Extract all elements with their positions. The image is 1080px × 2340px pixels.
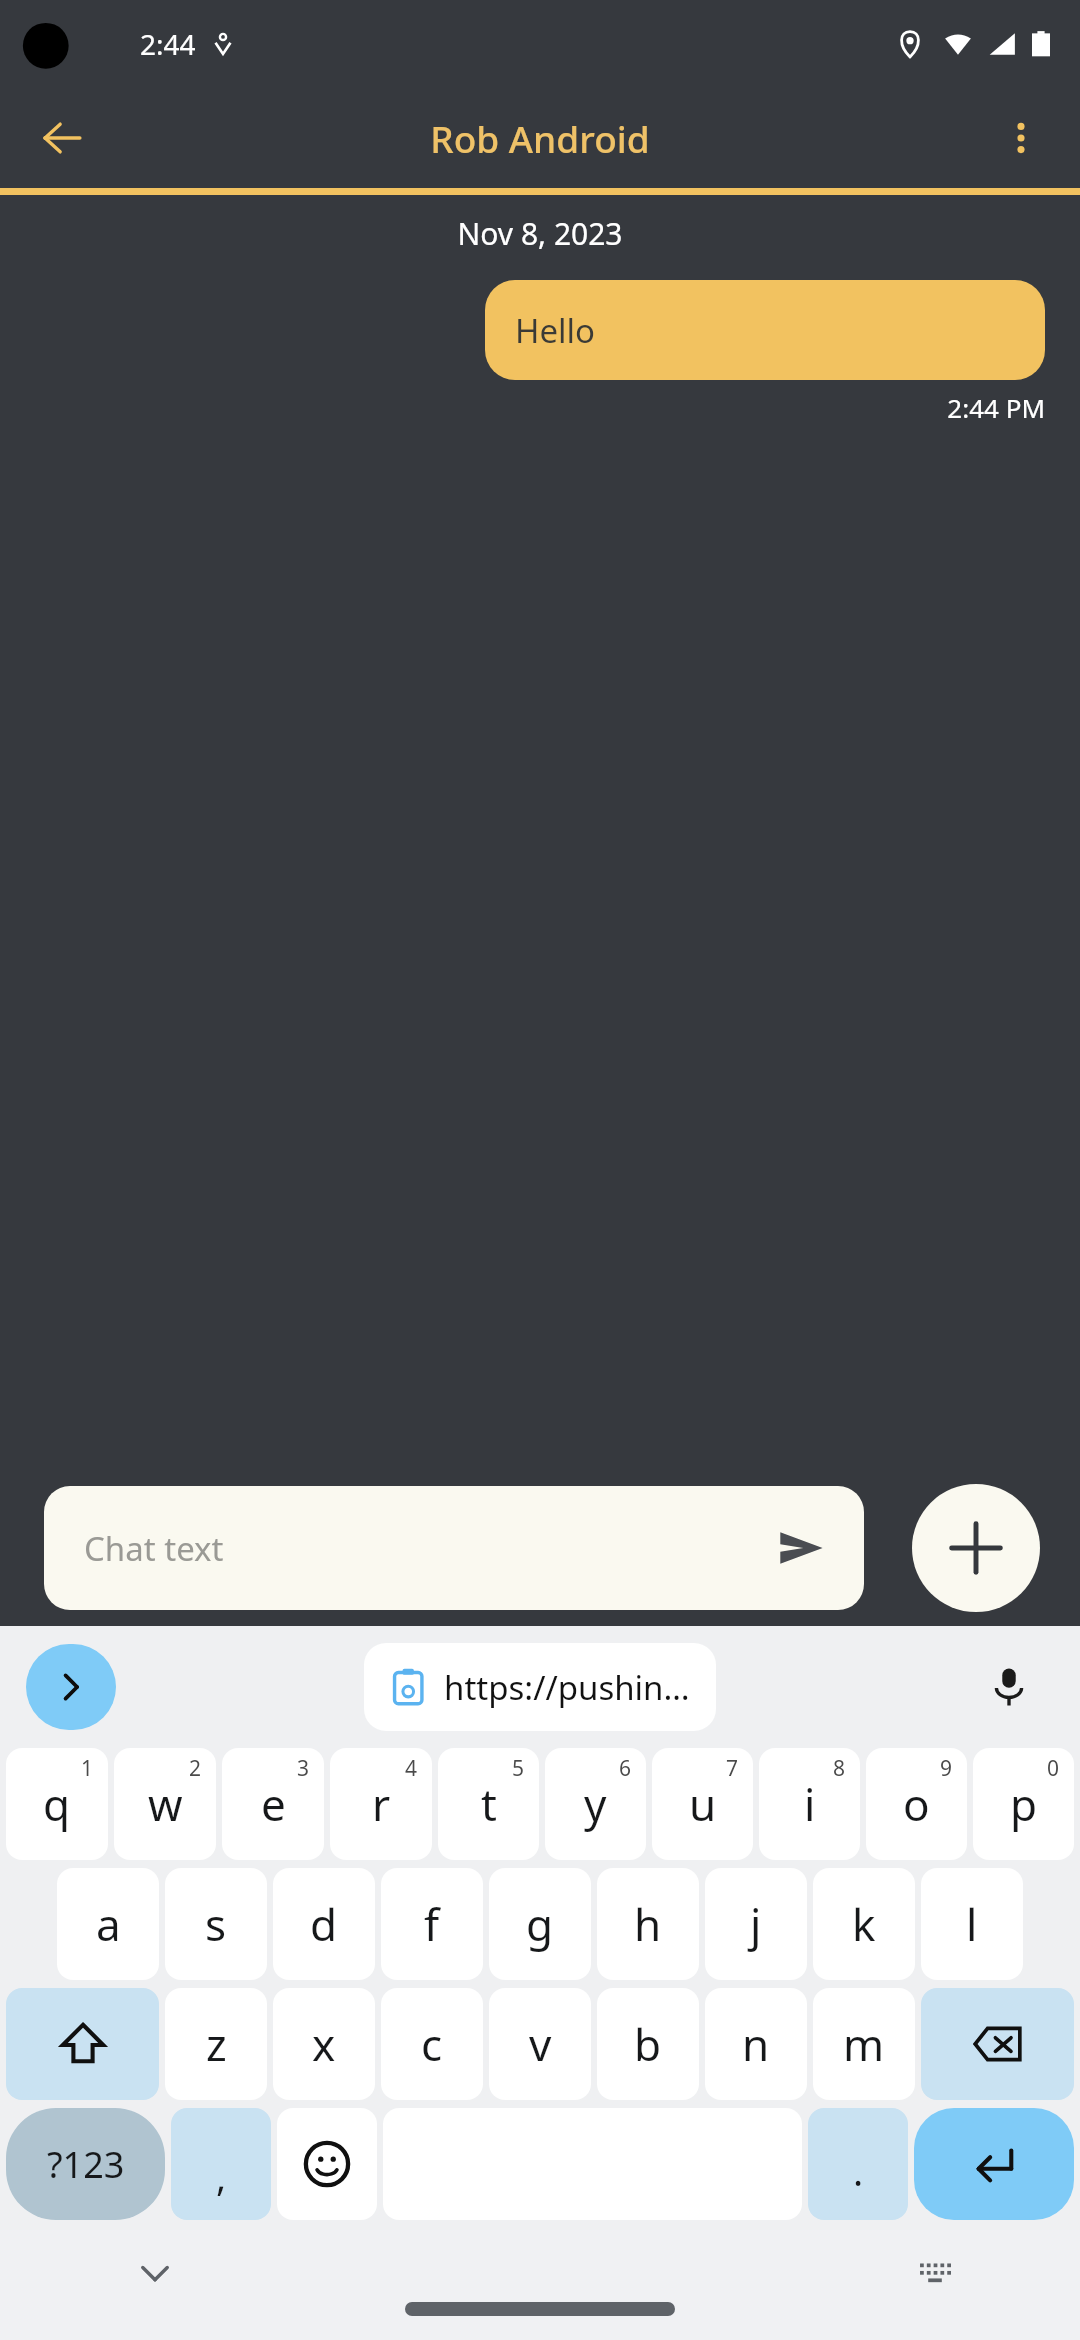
staticText: l (966, 1894, 978, 1954)
button[interactable]: Enter (914, 2108, 1074, 2220)
button[interactable]: g (489, 1868, 591, 1980)
button[interactable]: q (6, 1748, 108, 1860)
staticText: q (43, 1774, 71, 1834)
button[interactable]: o (866, 1748, 967, 1860)
button[interactable]: Hide keyboard (120, 2238, 190, 2308)
staticText: 6 (619, 1754, 632, 1783)
button[interactable]: t (438, 1748, 539, 1860)
staticText: 9 (940, 1754, 953, 1783)
button[interactable]: e (222, 1748, 324, 1860)
button[interactable]: Back (22, 99, 100, 177)
button[interactable]: y (545, 1748, 646, 1860)
staticText: Hello (515, 308, 596, 353)
staticText: ?123 (47, 2140, 125, 2189)
button[interactable]: u (652, 1748, 753, 1860)
staticText: u (689, 1774, 717, 1834)
staticText: . (853, 2145, 864, 2197)
staticText: t (481, 1774, 497, 1834)
button[interactable]: . (808, 2108, 908, 2220)
staticText: 3 (297, 1754, 310, 1783)
button[interactable]: i (759, 1748, 860, 1860)
staticText: 2:44 PM (0, 390, 1045, 425)
staticText: o (903, 1774, 930, 1834)
staticText: x (312, 2014, 336, 2074)
button[interactable]: Emoji (277, 2108, 377, 2220)
staticText: i (804, 1774, 816, 1834)
staticText: h (634, 1894, 662, 1954)
staticText: b (634, 2014, 662, 2074)
staticText: e (261, 1774, 286, 1834)
button[interactable]: Add attachment (912, 1484, 1040, 1612)
button[interactable]: s (165, 1868, 267, 1980)
staticText: Nov 8, 2023 (0, 213, 1080, 254)
staticText: p (1010, 1774, 1038, 1834)
staticText: 0 (1047, 1754, 1060, 1783)
button[interactable]: h (597, 1868, 699, 1980)
staticText: c (421, 2014, 443, 2074)
staticText: v (529, 2014, 552, 2074)
staticText: a (96, 1894, 121, 1954)
button[interactable]: d (273, 1868, 375, 1980)
staticText: Chat text (84, 1526, 778, 1571)
button[interactable]: https://pushin… (364, 1643, 716, 1731)
button[interactable]: , (171, 2108, 271, 2220)
button[interactable]: Backspace (921, 1988, 1074, 2100)
button[interactable]: w (114, 1748, 216, 1860)
staticText: 8 (833, 1754, 846, 1783)
staticText: j (750, 1894, 762, 1954)
button[interactable]: p (973, 1748, 1074, 1860)
button[interactable]: x (273, 1988, 375, 2100)
button[interactable]: More options (984, 101, 1058, 175)
staticText: m (843, 2014, 885, 2074)
button[interactable]: Hello (485, 280, 1045, 380)
staticText: https://pushin… (444, 1665, 690, 1710)
staticText: 4 (405, 1754, 418, 1783)
staticText: s (205, 1894, 227, 1954)
button[interactable]: ?123 (6, 2108, 165, 2220)
button[interactable]: v (489, 1988, 591, 2100)
staticText: n (742, 2014, 770, 2074)
staticText: 5 (512, 1754, 525, 1783)
button[interactable]: l (921, 1868, 1023, 1980)
button[interactable]: More suggestions (26, 1644, 116, 1730)
button[interactable]: r (330, 1748, 432, 1860)
button[interactable]: c (381, 1988, 483, 2100)
button[interactable]: Change keyboard (900, 2238, 970, 2308)
staticText: d (310, 1894, 338, 1954)
staticText: 7 (726, 1754, 739, 1783)
staticText: r (372, 1774, 391, 1834)
staticText: , (216, 2150, 227, 2202)
button[interactable]: Chat text (44, 1486, 864, 1610)
button[interactable]: k (813, 1868, 915, 1980)
button[interactable]: m (813, 1988, 915, 2100)
staticText: g (526, 1894, 554, 1954)
button[interactable]: Voice input (972, 1650, 1046, 1724)
button[interactable]: Shift (6, 1988, 159, 2100)
button[interactable]: z (165, 1988, 267, 2100)
staticText: k (852, 1894, 876, 1954)
other: Send (778, 1525, 824, 1571)
button[interactable]: f (381, 1868, 483, 1980)
staticText: 2 (189, 1754, 202, 1783)
staticText: f (424, 1894, 440, 1954)
staticText: 2:44 (140, 25, 196, 63)
staticText: z (206, 2014, 227, 2074)
button[interactable]: j (705, 1868, 807, 1980)
staticText: y (584, 1774, 607, 1834)
button[interactable]: n (705, 1988, 807, 2100)
staticText: 1 (81, 1754, 94, 1783)
button[interactable]: a (57, 1868, 159, 1980)
button[interactable]: b (597, 1988, 699, 2100)
staticText: Rob Android (430, 113, 650, 163)
staticText: w (148, 1774, 183, 1834)
